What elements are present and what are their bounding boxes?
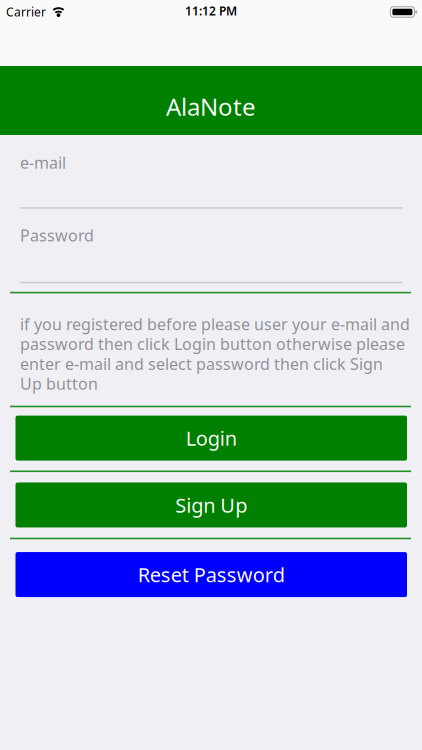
staticText: if you registered before please user you… <box>20 313 410 335</box>
staticText: Carrier <box>6 4 46 20</box>
staticText: enter e-mail and select password then cl… <box>20 353 383 374</box>
staticText: Up button <box>20 373 98 394</box>
staticText: Login <box>186 425 237 451</box>
staticText: Sign Up <box>175 492 247 518</box>
staticText: Password <box>20 225 94 246</box>
staticText: Reset Password <box>138 561 285 588</box>
button[interactable]: Reset Password <box>15 552 407 597</box>
staticText: password then click Login button otherwi… <box>20 333 405 354</box>
button[interactable]: Sign Up <box>15 482 407 527</box>
staticText: 11:12 PM <box>185 3 237 19</box>
staticText: e-mail <box>20 152 66 173</box>
button[interactable]: Login <box>15 416 407 461</box>
staticText: AlaNote <box>166 91 256 122</box>
